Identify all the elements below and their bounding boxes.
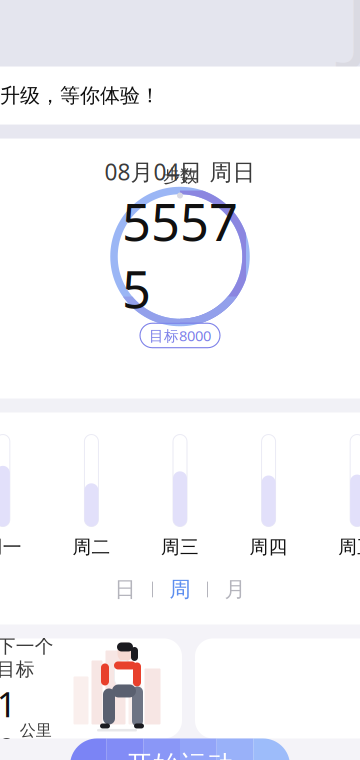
- button[interactable]: 新版体验全新升级，等你体验！: [0, 66, 360, 124]
- staticText: 日: [114, 576, 135, 603]
- staticText: 10: [0, 681, 17, 760]
- staticText: 月: [224, 576, 245, 603]
- staticText: 周一: [0, 535, 22, 558]
- staticText: 周五: [338, 535, 360, 558]
- button[interactable]: 周一: [0, 434, 47, 558]
- button[interactable]: 周三: [136, 434, 224, 558]
- staticText: 08月04日 周日: [104, 156, 255, 187]
- button[interactable]: 跑步记录: [0, 638, 182, 738]
- button[interactable]: 周二: [47, 434, 136, 558]
- staticText: 公里: [20, 720, 52, 740]
- staticText: 周二: [72, 535, 110, 558]
- staticText: 开始运动: [126, 749, 234, 760]
- staticText: 步数: [163, 165, 197, 187]
- button[interactable]: 周: [153, 574, 207, 604]
- staticText: 新版体验全新升级，等你体验！: [0, 83, 160, 108]
- button[interactable]: 日: [98, 574, 152, 604]
- staticText: 下一个目标: [0, 635, 54, 681]
- staticText: 周: [169, 576, 190, 603]
- button[interactable]: 运动量: [0, 138, 360, 398]
- staticText: 周四: [250, 535, 288, 558]
- button[interactable]: 周五: [313, 434, 360, 558]
- button[interactable]: 开始运动: [70, 738, 290, 760]
- button[interactable]: 周四: [224, 434, 313, 558]
- staticText: Jovi: [344, 0, 360, 80]
- staticText: 周三: [161, 535, 199, 558]
- button[interactable]: 月: [208, 574, 262, 604]
- staticText: 55575: [122, 188, 238, 322]
- staticText: 目标8000: [149, 326, 211, 345]
